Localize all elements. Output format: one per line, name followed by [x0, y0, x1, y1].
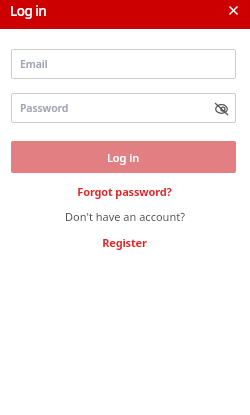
staticText: Password: [20, 101, 69, 115]
button[interactable]: Forgot password?: [0, 181, 250, 202]
button[interactable]: Log in: [11, 141, 236, 173]
staticText: Forgot password?: [77, 184, 172, 199]
staticText: Log in: [10, 2, 47, 20]
button[interactable]: Close: [222, 0, 245, 22]
staticText: Register: [102, 235, 147, 250]
staticText: Log in: [107, 150, 140, 165]
staticText: Don't have an account?: [0, 209, 250, 224]
staticText: Email: [20, 57, 48, 71]
button[interactable]: Show password: [210, 97, 232, 119]
button[interactable]: Register: [0, 232, 250, 253]
button[interactable]: Password: [11, 93, 236, 123]
button[interactable]: Email: [11, 49, 236, 79]
